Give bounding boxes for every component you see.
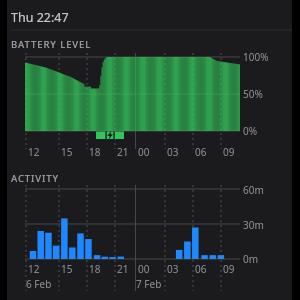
button[interactable]: Activity chart bbox=[7, 170, 292, 290]
staticText: 0% bbox=[243, 124, 258, 138]
staticText: 09 bbox=[223, 145, 235, 159]
staticText: 0m bbox=[243, 252, 259, 266]
button[interactable]: Battery level chart bbox=[7, 36, 292, 156]
staticText: 18 bbox=[89, 262, 101, 276]
staticText: 06 bbox=[195, 262, 207, 276]
staticText: 100% bbox=[243, 50, 269, 64]
staticText: 03 bbox=[167, 145, 179, 159]
staticText: Thu 22:47 bbox=[11, 9, 69, 26]
staticText: 15 bbox=[61, 145, 73, 159]
staticText: 00 bbox=[138, 145, 150, 159]
staticText: 12 bbox=[28, 262, 40, 276]
staticText: 03 bbox=[167, 262, 179, 276]
staticText: ACTIVITY bbox=[11, 172, 60, 185]
staticText: 15 bbox=[61, 262, 73, 276]
staticText: 6 Feb bbox=[26, 277, 52, 291]
staticText: BATTERY LEVEL bbox=[11, 38, 92, 51]
staticText: 12 bbox=[28, 145, 40, 159]
staticText: 50% bbox=[243, 87, 263, 101]
staticText: 00 bbox=[138, 262, 150, 276]
staticText: 21 bbox=[117, 145, 129, 159]
staticText: 30m bbox=[243, 218, 264, 232]
staticText: 09 bbox=[223, 262, 235, 276]
staticText: 60m bbox=[243, 183, 264, 197]
staticText: 21 bbox=[117, 262, 129, 276]
staticText: 06 bbox=[195, 145, 207, 159]
staticText: 18 bbox=[89, 145, 101, 159]
staticText: 7 Feb bbox=[136, 277, 162, 291]
